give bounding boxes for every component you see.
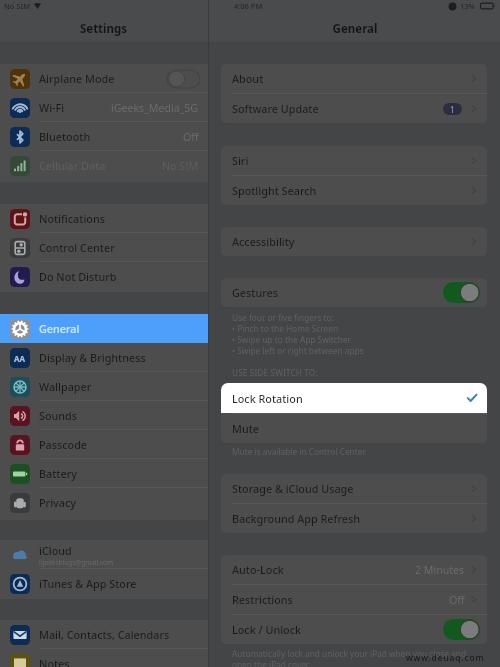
button[interactable]: General <box>0 314 208 343</box>
button[interactable]: Airplane Mode <box>0 64 208 93</box>
staticText: Use four or five fingers to: <box>232 312 334 323</box>
button[interactable]: Spotlight Search <box>221 176 487 205</box>
button[interactable]: Mail, Contacts, Calendars <box>0 620 208 649</box>
button[interactable]: Sounds <box>0 401 208 430</box>
button[interactable]: AA <box>0 343 208 372</box>
staticText: Settings <box>0 21 207 37</box>
button[interactable]: Background App Refresh <box>221 504 487 533</box>
button[interactable]: Cellular Data <box>0 151 208 180</box>
staticText: 2 Minutes <box>415 563 465 577</box>
button[interactable]: Auto-Lock <box>221 555 487 584</box>
button[interactable]: iCloud <box>0 540 208 569</box>
staticText: USE SIDE SWITCH TO: <box>232 367 318 378</box>
staticText: AA <box>14 353 26 364</box>
staticText: General <box>210 21 500 37</box>
staticText: Lock / Unlock <box>232 622 302 637</box>
staticText: Software Update <box>232 101 319 116</box>
staticText: Wallpaper <box>39 379 92 394</box>
button[interactable]: Notes <box>0 649 208 667</box>
button[interactable]: Lock / Unlock <box>221 615 487 644</box>
button[interactable]: Privacy <box>0 488 208 517</box>
staticText: Lock Rotation <box>232 391 303 406</box>
staticText: No SIM <box>4 1 31 11</box>
button[interactable]: Mute <box>221 414 487 443</box>
button[interactable]: Storage & iCloud Usage <box>221 474 487 503</box>
staticText: General <box>39 321 80 336</box>
staticText: Mute <box>232 421 260 436</box>
button[interactable]: Do Not Disturb <box>0 262 208 291</box>
staticText: • Swipe left or right between apps <box>232 345 364 356</box>
staticText: Accessibility <box>232 234 295 249</box>
button[interactable]: Bluetooth <box>0 122 208 151</box>
button[interactable]: Toggle off <box>167 70 200 88</box>
staticText: Off <box>449 593 465 607</box>
staticText: Notifications <box>39 211 105 226</box>
staticText: Privacy <box>39 495 76 510</box>
staticText: Control Center <box>39 240 115 255</box>
staticText: igeeksblogs@gmail.com <box>39 558 114 567</box>
staticText: Do Not Disturb <box>39 269 117 284</box>
staticText: Airplane Mode <box>39 71 115 86</box>
staticText: Restrictions <box>232 592 293 607</box>
staticText: Sounds <box>39 408 78 423</box>
staticText: 1 <box>450 104 455 115</box>
staticText: • Pinch to the Home Screen <box>232 323 339 334</box>
staticText: iTunes & App Store <box>39 576 137 591</box>
staticText: Wi-Fi <box>39 100 65 115</box>
staticText: Cellular Data <box>39 158 106 173</box>
staticText: No SIM <box>162 159 199 173</box>
staticText: Storage & iCloud Usage <box>232 481 354 496</box>
staticText: Auto-Lock <box>232 562 284 577</box>
button[interactable]: Wallpaper <box>0 372 208 401</box>
button[interactable]: About <box>221 64 487 93</box>
button[interactable]: Wi-Fi <box>0 93 208 122</box>
staticText: 13% <box>460 1 475 11</box>
staticText: Siri <box>232 153 249 168</box>
staticText: www.deuaq.com <box>406 652 485 664</box>
button[interactable]: Toggle on <box>443 282 480 303</box>
staticText: Automatically lock and unlock your iPad … <box>232 648 467 659</box>
staticText: Battery <box>39 466 77 481</box>
staticText: About <box>232 71 264 86</box>
button[interactable]: Notifications <box>0 204 208 233</box>
staticText: • Swipe up to the App Switcher <box>232 334 352 345</box>
staticText: Background App Refresh <box>232 511 360 526</box>
staticText: Off <box>183 130 199 144</box>
staticText: iCloud <box>39 543 72 558</box>
staticText: Mail, Contacts, Calendars <box>39 627 170 642</box>
button[interactable]: Restrictions <box>221 585 487 614</box>
staticText: Gestures <box>232 285 278 300</box>
button[interactable]: Accessibility <box>221 227 487 256</box>
button[interactable]: Passcode <box>0 430 208 459</box>
button[interactable]: Battery <box>0 459 208 488</box>
button[interactable]: Control Center <box>0 233 208 262</box>
staticText: Spotlight Search <box>232 183 317 198</box>
button[interactable]: Lock Rotation <box>221 383 487 413</box>
staticText: iGeeks_Media_5G <box>111 101 199 115</box>
staticText: 4:06 PM <box>234 1 263 11</box>
button[interactable]: Toggle on <box>443 619 480 640</box>
staticText: Mute is available in Control Center. <box>232 446 367 457</box>
staticText: open the iPad cover. <box>232 659 311 667</box>
staticText: Display & Brightness <box>39 350 146 365</box>
button[interactable]: Gestures <box>221 278 487 307</box>
staticText: Bluetooth <box>39 129 91 144</box>
staticText: Notes <box>39 656 70 667</box>
button[interactable]: iTunes & App Store <box>0 569 208 598</box>
staticText: Passcode <box>39 437 88 452</box>
button[interactable]: Software Update <box>221 94 487 123</box>
